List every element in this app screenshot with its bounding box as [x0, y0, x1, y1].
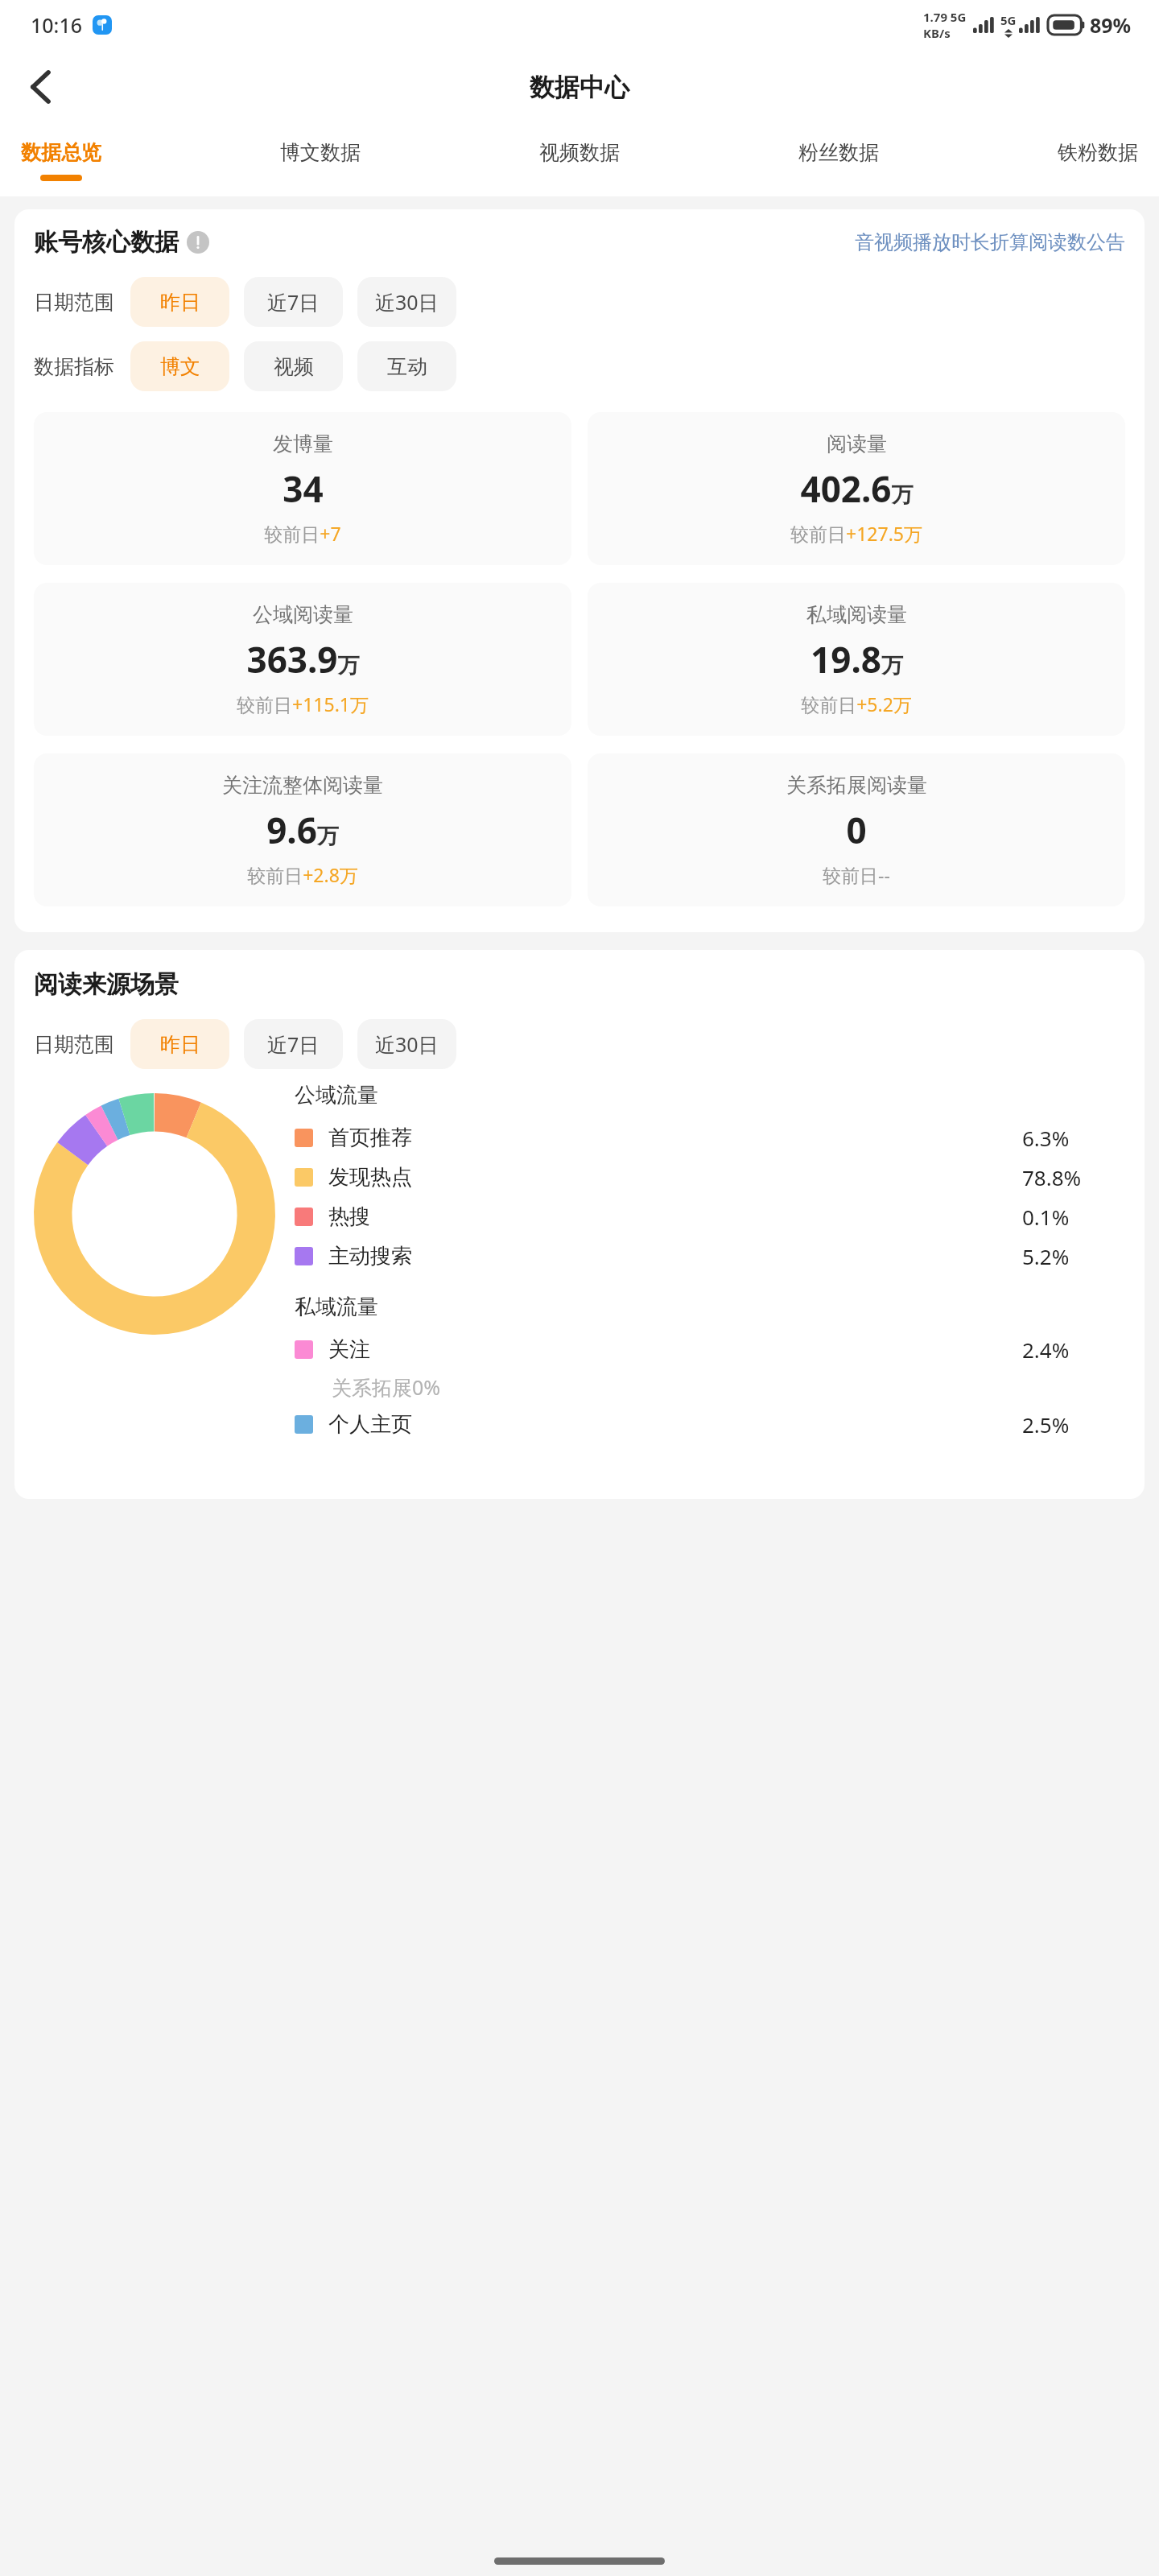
staticText: 较前日+115.1万 [237, 691, 369, 716]
button[interactable]: 发博量 [34, 412, 571, 565]
button[interactable]: 互动 [357, 341, 456, 391]
staticText: 日期范围 [34, 1032, 114, 1057]
staticText: 数据总览 [21, 140, 101, 165]
staticText: 较前日+5.2万 [801, 691, 912, 716]
button[interactable]: 说明 [187, 231, 209, 254]
staticText: 发现热点 [328, 1164, 412, 1191]
staticText: 0 [846, 806, 867, 854]
button[interactable]: 音视频播放时长折算阅读数公告 [855, 230, 1125, 254]
staticText: 较前日+7 [264, 521, 341, 546]
button[interactable]: 关注流整体阅读量 [34, 753, 571, 906]
staticText: 发博量 [273, 431, 333, 456]
staticText: 5.2% [1022, 1242, 1070, 1270]
button[interactable]: 首页推荐 [295, 1118, 1125, 1158]
button[interactable]: Back [14, 62, 64, 112]
staticText: 博文数据 [280, 140, 361, 165]
staticText: 公域阅读量 [253, 602, 353, 627]
staticText: 5G [1000, 12, 1017, 28]
button[interactable]: 数据总览 [16, 124, 106, 181]
staticText: 账号核心数据 [34, 227, 179, 258]
staticText: 0.1% [1022, 1203, 1070, 1231]
staticText: 402.6万 [800, 464, 914, 513]
staticText: 粉丝数据 [798, 140, 879, 165]
staticText: 数据指标 [34, 354, 114, 379]
staticText: 近7日 [267, 1030, 320, 1058]
staticText: 关系拓展阅读量 [786, 773, 927, 798]
staticText: 9.6万 [266, 806, 339, 854]
staticText: 关注 [328, 1336, 370, 1363]
staticText: 较前日+2.8万 [247, 862, 358, 887]
staticText: 首页推荐 [328, 1125, 412, 1151]
staticText: 博文 [160, 354, 200, 379]
button[interactable]: 博文 [130, 341, 229, 391]
staticText: KB/s [923, 25, 951, 41]
staticText: 互动 [387, 354, 427, 379]
staticText: 视频数据 [539, 140, 620, 165]
button[interactable]: 昨日 [130, 277, 229, 327]
staticText: 阅读来源场景 [34, 969, 179, 1000]
button[interactable]: 关注 [295, 1330, 1125, 1369]
staticText: 主动搜索 [328, 1243, 412, 1269]
staticText: 私域阅读量 [806, 602, 907, 627]
staticText: 个人主页 [328, 1411, 412, 1438]
staticText: 热搜 [328, 1203, 370, 1230]
staticText: 昨日 [160, 1032, 200, 1057]
staticText: 数据中心 [530, 72, 629, 103]
staticText: 78.8% [1022, 1163, 1082, 1191]
staticText: 铁粉数据 [1058, 140, 1138, 165]
staticText: 1.79 5G [923, 9, 967, 25]
button[interactable]: 私域阅读量 [588, 583, 1125, 736]
button[interactable]: 近7日 [244, 277, 343, 327]
button[interactable]: 铁粉数据 [1053, 124, 1143, 175]
button[interactable]: 阅读量 [588, 412, 1125, 565]
staticText: 89% [1090, 11, 1132, 39]
button[interactable]: 昨日 [130, 1019, 229, 1069]
button[interactable]: 公域阅读量 [34, 583, 571, 736]
staticText: 关系拓展0% [332, 1373, 441, 1401]
staticText: 34 [283, 464, 324, 513]
staticText: 日期范围 [34, 290, 114, 315]
staticText: 近30日 [375, 288, 439, 316]
button[interactable]: 视频数据 [534, 124, 625, 175]
button[interactable]: 个人主页 [295, 1405, 1125, 1444]
button[interactable]: 近7日 [244, 1019, 343, 1069]
staticText: 昨日 [160, 290, 200, 315]
button[interactable]: 近30日 [357, 1019, 456, 1069]
button[interactable]: 近30日 [357, 277, 456, 327]
staticText: 363.9万 [246, 635, 360, 683]
staticText: 6.3% [1022, 1124, 1070, 1152]
staticText: 较前日+127.5万 [790, 521, 922, 546]
staticText: 2.5% [1022, 1410, 1070, 1439]
staticText: 较前日-- [823, 862, 890, 887]
button[interactable]: 主动搜索 [295, 1236, 1125, 1276]
staticText: 公域流量 [295, 1082, 378, 1108]
staticText: 关注流整体阅读量 [222, 773, 383, 798]
staticText: 近30日 [375, 1030, 439, 1058]
staticText: 10:16 [31, 11, 83, 39]
staticText: 近7日 [267, 288, 320, 316]
staticText: 私域流量 [295, 1294, 378, 1320]
button[interactable]: 关系拓展阅读量 [588, 753, 1125, 906]
button[interactable]: 热搜 [295, 1197, 1125, 1236]
button[interactable]: 发现热点 [295, 1158, 1125, 1197]
staticText: 视频 [274, 354, 314, 379]
button[interactable]: 视频 [244, 341, 343, 391]
button[interactable]: 粉丝数据 [794, 124, 884, 175]
staticText: 2.4% [1022, 1335, 1070, 1364]
staticText: 19.8万 [810, 635, 903, 683]
staticText: 阅读量 [827, 431, 887, 456]
button[interactable]: 博文数据 [275, 124, 365, 175]
